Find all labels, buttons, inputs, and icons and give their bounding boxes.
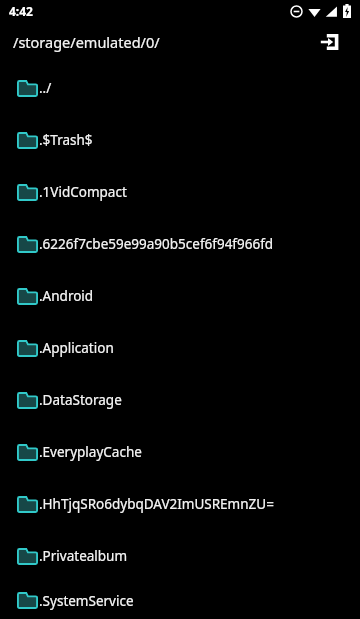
staticText: .DataStorage — [39, 391, 122, 409]
staticText: .SystemService — [39, 592, 134, 610]
button[interactable]: .Android — [0, 270, 360, 322]
staticText: .6226f7cbe59e99a90b5cef6f94f966fd — [39, 235, 274, 253]
button[interactable]: .DataStorage — [0, 374, 360, 426]
staticText: .Android — [39, 287, 94, 305]
button[interactable]: .HhTjqSRo6dybqDAV2ImUSREmnZU= — [0, 478, 360, 530]
button[interactable]: .$Trash$ — [0, 114, 360, 166]
button[interactable]: ../ — [0, 62, 360, 114]
staticText: .HhTjqSRo6dybqDAV2ImUSREmnZU= — [39, 495, 274, 513]
staticText: /storage/emulated/0/ — [13, 32, 160, 52]
button[interactable]: .Privatealbum — [0, 530, 360, 582]
staticText: .1VidCompact — [39, 183, 127, 201]
button[interactable]: .Application — [0, 322, 360, 374]
staticText: .Privatealbum — [39, 547, 128, 565]
button[interactable]: .6226f7cbe59e99a90b5cef6f94f966fd — [0, 218, 360, 270]
staticText: .Application — [39, 339, 114, 357]
button[interactable]: .SystemService — [0, 582, 360, 619]
button[interactable]: Exit — [313, 25, 347, 59]
staticText: .EveryplayCache — [39, 443, 142, 461]
staticText: .$Trash$ — [39, 131, 93, 149]
button[interactable]: .1VidCompact — [0, 166, 360, 218]
staticText: 4:42 — [9, 3, 33, 19]
staticText: ../ — [39, 79, 52, 97]
button[interactable]: .EveryplayCache — [0, 426, 360, 478]
